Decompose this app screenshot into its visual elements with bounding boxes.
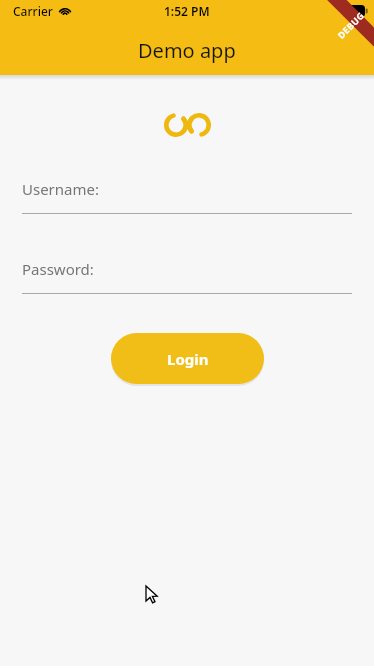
button[interactable]: Password:	[0, 259, 374, 294]
staticText: Login	[167, 349, 209, 369]
staticText: Demo app	[138, 37, 236, 64]
staticText: 1:52 PM	[164, 3, 210, 19]
other: App logo	[164, 113, 211, 137]
staticText: Password:	[22, 259, 94, 279]
staticText: DEBUG	[335, 9, 366, 41]
staticText: Carrier	[13, 3, 53, 19]
button[interactable]: Login	[111, 333, 264, 384]
staticText: Username:	[22, 179, 99, 199]
button[interactable]: Username:	[0, 179, 374, 214]
